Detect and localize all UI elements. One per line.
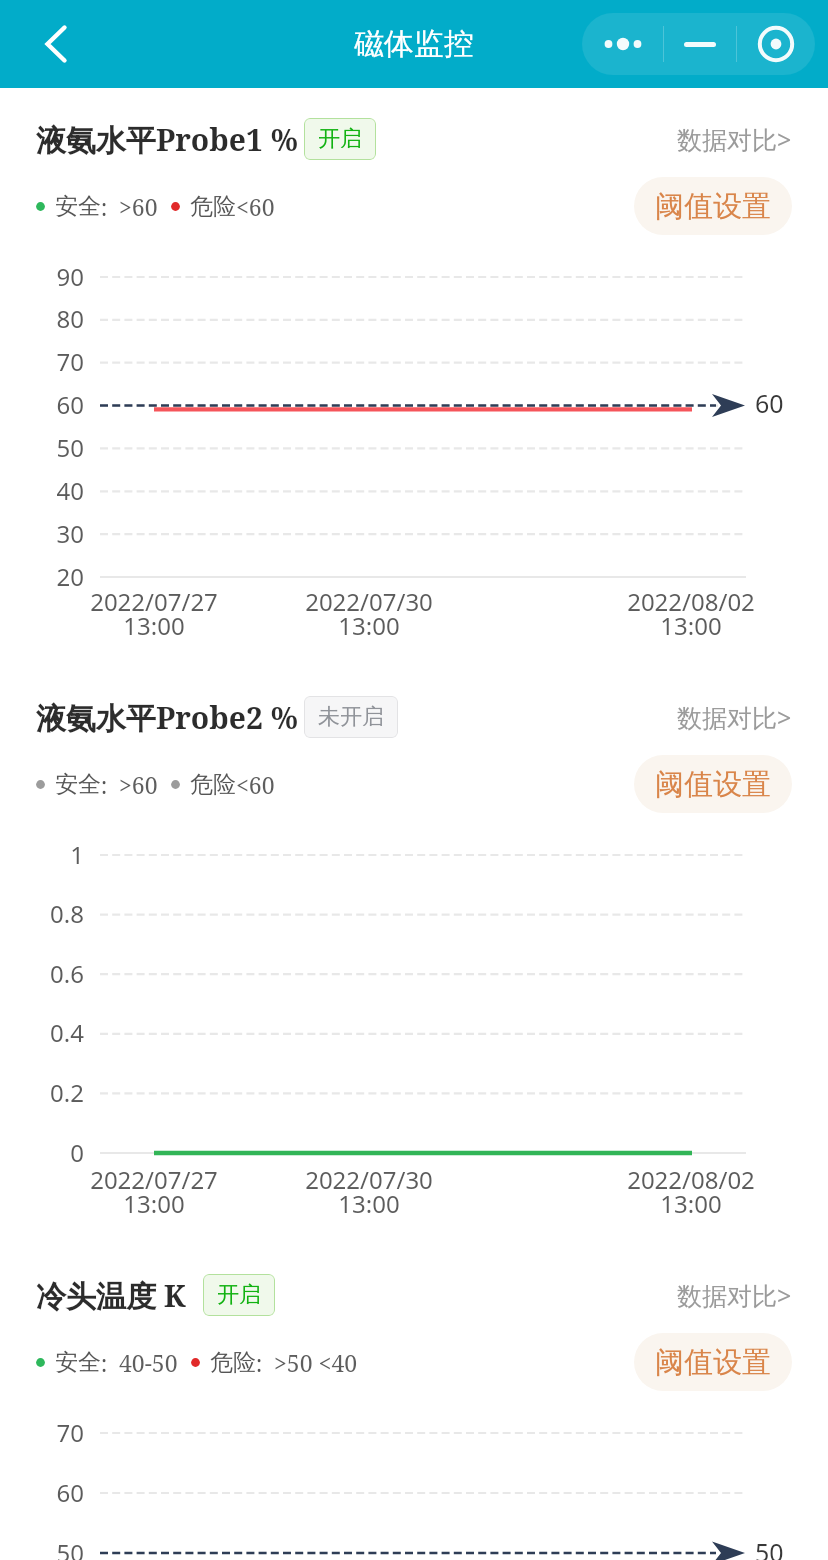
staticText: 90 [0, 260, 84, 293]
staticText: 安全 [55, 770, 101, 799]
staticText: <60 [236, 769, 275, 800]
staticText: 60 [0, 388, 84, 421]
staticText: 开启 [217, 1281, 261, 1309]
staticText: 50 [755, 1535, 784, 1560]
staticText: 2022/07/27 13:00 [69, 1163, 239, 1220]
button[interactable]: 开启 [203, 1274, 275, 1316]
button[interactable]: 数据对比> [669, 1265, 800, 1325]
staticText: 30 [0, 517, 84, 550]
button[interactable]: More [582, 13, 663, 75]
staticText: 2022/08/02 13:00 [606, 1163, 776, 1220]
staticText: 60 [755, 386, 784, 420]
button[interactable]: Back [30, 18, 82, 70]
staticText: : [101, 1347, 108, 1378]
button[interactable]: 未开启 [304, 696, 398, 738]
staticText: 液氨水平Probe2 % [36, 697, 298, 738]
button[interactable]: 数据对比> [669, 687, 800, 747]
staticText: 0.4 [0, 1016, 84, 1049]
staticText: 2022/08/02 13:00 [606, 585, 776, 642]
button[interactable]: 阈值设置 [634, 177, 792, 235]
button[interactable]: 阈值设置 [634, 1333, 792, 1391]
staticText: 2022/07/30 13:00 [284, 1163, 454, 1220]
staticText: 安全 [55, 192, 101, 221]
staticText: : [101, 191, 108, 222]
staticText: 70 [0, 1416, 84, 1449]
staticText: 开启 [318, 125, 362, 153]
staticText: 液氨水平Probe1 % [36, 119, 298, 160]
staticText: 70 [0, 345, 84, 378]
staticText: 磁体监控 [354, 25, 474, 63]
staticText: 冷头温度 K [36, 1275, 186, 1316]
staticText: 2022/07/27 13:00 [69, 585, 239, 642]
staticText: 2022/07/30 13:00 [284, 585, 454, 642]
staticText: 0 [0, 1136, 84, 1169]
staticText: 阈值设置 [655, 1344, 771, 1381]
staticText: 阈值设置 [655, 188, 771, 225]
staticText: 60 [0, 1476, 84, 1509]
button[interactable]: Minimize [664, 13, 736, 75]
staticText: 阈值设置 [655, 766, 771, 803]
staticText: 1 [0, 838, 84, 871]
staticText: >60 [119, 769, 158, 800]
staticText: 20 [0, 560, 84, 593]
staticText: 0.6 [0, 957, 84, 990]
staticText: 0.8 [0, 897, 84, 930]
staticText: : [101, 769, 108, 800]
staticText: 安全 [55, 1348, 101, 1377]
staticText: 数据对比> [677, 122, 792, 156]
staticText: 80 [0, 302, 84, 335]
staticText: 危险 [190, 770, 236, 799]
button[interactable]: 阈值设置 [634, 755, 792, 813]
button[interactable]: 数据对比> [669, 109, 800, 169]
button[interactable]: Close [737, 13, 815, 75]
staticText: 50 [0, 431, 84, 464]
staticText: 数据对比> [677, 700, 792, 734]
staticText: 数据对比> [677, 1278, 792, 1312]
staticText: <60 [236, 191, 275, 222]
staticText: 危险 [210, 1348, 256, 1377]
staticText: 40-50 [119, 1347, 178, 1378]
staticText: >50 <40 [274, 1347, 358, 1378]
staticText: 危险 [190, 192, 236, 221]
staticText: 未开启 [318, 703, 384, 731]
staticText: 0.2 [0, 1076, 84, 1109]
button[interactable]: 开启 [304, 118, 376, 160]
staticText: 40 [0, 474, 84, 507]
staticText: : [256, 1347, 263, 1378]
staticText: 50 [0, 1536, 84, 1560]
staticText: >60 [119, 191, 158, 222]
